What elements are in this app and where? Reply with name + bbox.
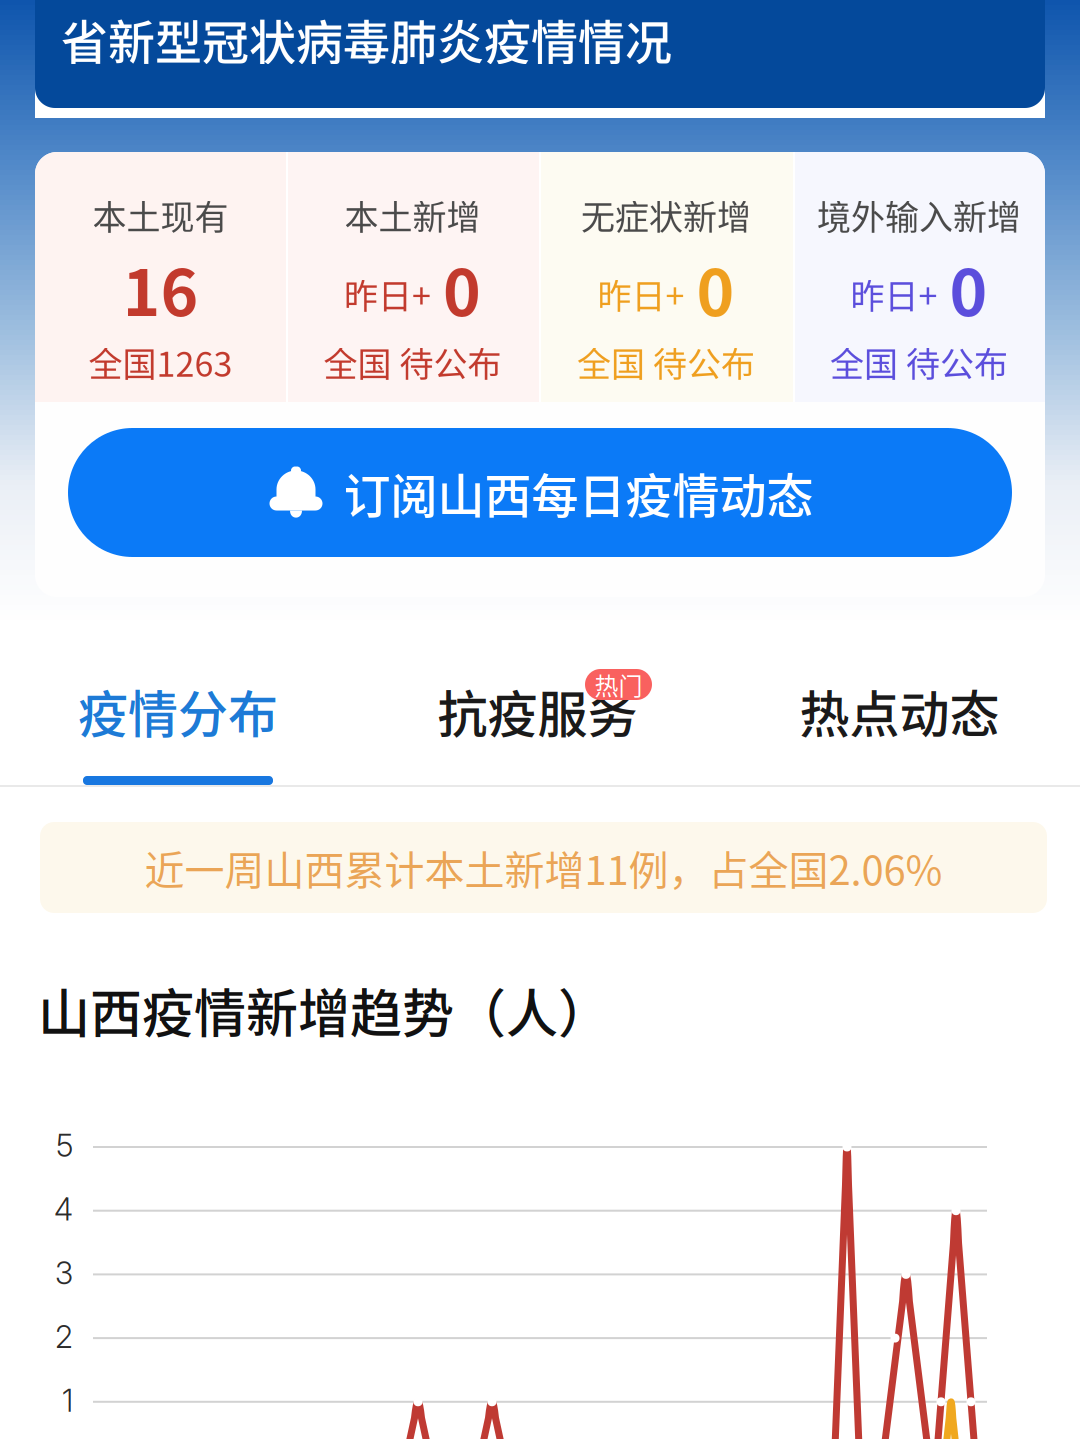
staticText: 4	[54, 1191, 73, 1228]
staticText: 16	[122, 242, 198, 334]
staticText: 近一周山西累计本土新增11例，占全国2.06%	[144, 838, 942, 896]
staticText: 热门	[594, 667, 642, 702]
staticText: 全国 待公布	[577, 337, 755, 387]
staticText: 境外输入新增	[817, 190, 1021, 240]
staticText: 0	[443, 242, 481, 334]
staticText: 订阅山西每日疫情动态	[343, 458, 813, 527]
staticText: 1	[62, 1382, 73, 1419]
staticText: 昨日+	[597, 269, 684, 319]
staticText: 本土现有	[92, 190, 228, 240]
staticText: 0	[696, 242, 734, 334]
staticText: 昨日+	[850, 269, 937, 319]
staticText: 全国 待公布	[323, 337, 501, 387]
button[interactable]: 热点动态	[719, 638, 1080, 785]
staticText: 全国 待公布	[830, 337, 1008, 387]
staticText: 热点动态	[799, 675, 999, 747]
staticText: 3	[55, 1254, 73, 1292]
staticText: 无症状新增	[581, 190, 751, 240]
staticText: 昨日+	[344, 269, 431, 319]
staticText: 2	[55, 1318, 73, 1355]
staticText: 全国1263	[88, 337, 232, 387]
staticText: 0	[949, 242, 987, 334]
staticText: 5	[56, 1127, 73, 1164]
staticText: 本土新增	[344, 190, 480, 240]
button[interactable]: 疫情分布	[0, 638, 356, 785]
button[interactable]: 订阅山西每日疫情动态	[68, 428, 1012, 557]
staticText: 抗疫服务	[437, 675, 637, 747]
staticText: 疫情分布	[78, 675, 278, 747]
staticText: 山西疫情新增趋势（人）	[38, 972, 610, 1048]
staticText: 省新型冠状病毒肺炎疫情情况	[61, 5, 672, 73]
button[interactable]: 抗疫服务	[356, 638, 719, 785]
